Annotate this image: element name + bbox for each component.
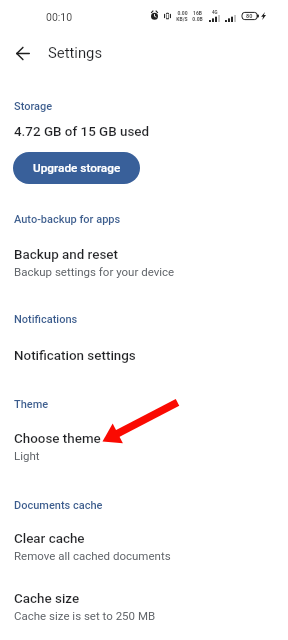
button[interactable]: [0, 421, 288, 468]
button[interactable]: Back: [7, 37, 39, 69]
staticText: 80: [246, 13, 253, 19]
staticText: Upgrade storage: [33, 161, 121, 175]
staticText: Storage: [14, 100, 53, 113]
staticText: Cache size: [14, 591, 80, 607]
staticText: Light: [14, 449, 40, 462]
staticText: Cache size is set to 250 MB: [14, 609, 156, 622]
staticText: Theme: [14, 398, 49, 411]
staticText: 0.0B: [192, 16, 203, 22]
staticText: Auto-backup for apps: [14, 213, 121, 226]
button[interactable]: [0, 581, 288, 628]
staticText: 4.72 GB of 15 GB used: [14, 124, 150, 140]
staticText: 00:10: [46, 11, 73, 23]
button[interactable]: [0, 236, 288, 284]
button[interactable]: Upgrade storage: [13, 152, 140, 184]
button[interactable]: [0, 521, 288, 568]
staticText: Notification settings: [14, 348, 136, 364]
staticText: KB/S: [176, 16, 188, 22]
staticText: Clear cache: [14, 531, 85, 547]
staticText: Settings: [48, 44, 103, 61]
staticText: Backup settings for your device: [14, 265, 175, 278]
staticText: Remove all cached documents: [14, 549, 171, 562]
staticText: Backup and reset: [14, 247, 118, 263]
staticText: 4G: [212, 10, 218, 15]
staticText: 0.00: [177, 10, 188, 16]
staticText: 16B: [193, 10, 202, 16]
button[interactable]: [0, 338, 288, 372]
staticText: Documents cache: [14, 499, 103, 512]
staticText: Choose theme: [14, 431, 101, 447]
staticText: Notifications: [14, 313, 78, 326]
